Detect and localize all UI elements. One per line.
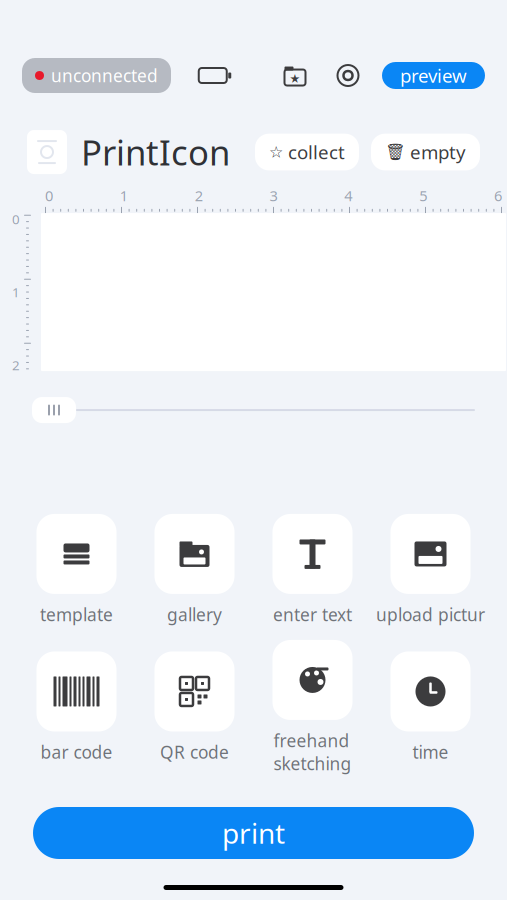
button[interactable]: Saved files	[278, 60, 312, 90]
button[interactable]: Battery	[195, 60, 235, 90]
button[interactable]: freehand sketching	[253, 640, 371, 775]
staticText: 4	[344, 186, 352, 205]
button[interactable]: upload pictur	[371, 514, 489, 626]
button[interactable]: print	[33, 807, 474, 859]
staticText: preview	[400, 63, 467, 88]
button[interactable]: ☆	[255, 134, 359, 170]
button[interactable]: time	[371, 651, 489, 763]
staticText: upload pictur	[376, 603, 485, 626]
staticText: time	[412, 740, 448, 763]
staticText: collect	[288, 140, 345, 164]
staticText: 0	[45, 186, 53, 205]
staticText: 2	[195, 186, 203, 205]
staticText: PrintIcon	[81, 129, 230, 175]
button[interactable]: template	[17, 514, 135, 626]
staticText: 1	[120, 186, 128, 205]
button[interactable]: preview	[382, 62, 485, 89]
button[interactable]: gallery	[135, 514, 253, 626]
staticText: QR code	[160, 740, 229, 763]
staticText: 3	[269, 186, 277, 205]
staticText: 1	[12, 283, 20, 301]
button[interactable]: enter text	[253, 514, 371, 626]
staticText: template	[40, 603, 113, 626]
button[interactable]: QR code	[135, 651, 253, 763]
button[interactable]: bar code	[17, 651, 135, 763]
staticText: ☆	[269, 143, 283, 161]
staticText: ★	[289, 72, 300, 85]
button[interactable]: Zoom handle	[32, 397, 76, 423]
staticText: 6	[494, 186, 502, 205]
staticText: enter text	[273, 603, 352, 626]
staticText: 5	[419, 186, 427, 205]
staticText: 🗑	[385, 143, 405, 161]
staticText: unconnected	[51, 64, 158, 87]
staticText: print	[222, 814, 285, 852]
staticText: 0	[12, 210, 20, 228]
staticText: empty	[410, 140, 466, 164]
staticText: freehand sketching	[273, 729, 351, 775]
staticText: 2	[12, 356, 20, 374]
staticText: gallery	[167, 603, 222, 626]
staticText: bar code	[40, 740, 112, 763]
button[interactable]: Settings	[332, 60, 364, 90]
button[interactable]: 🗑	[371, 134, 480, 170]
